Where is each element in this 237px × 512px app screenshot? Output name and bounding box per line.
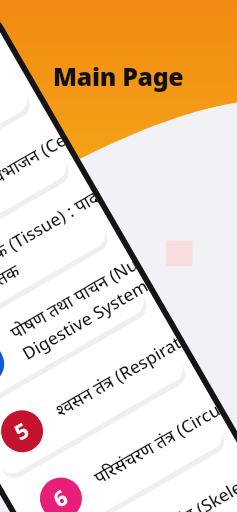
button[interactable]: Main Page app preview [0,0,237,512]
